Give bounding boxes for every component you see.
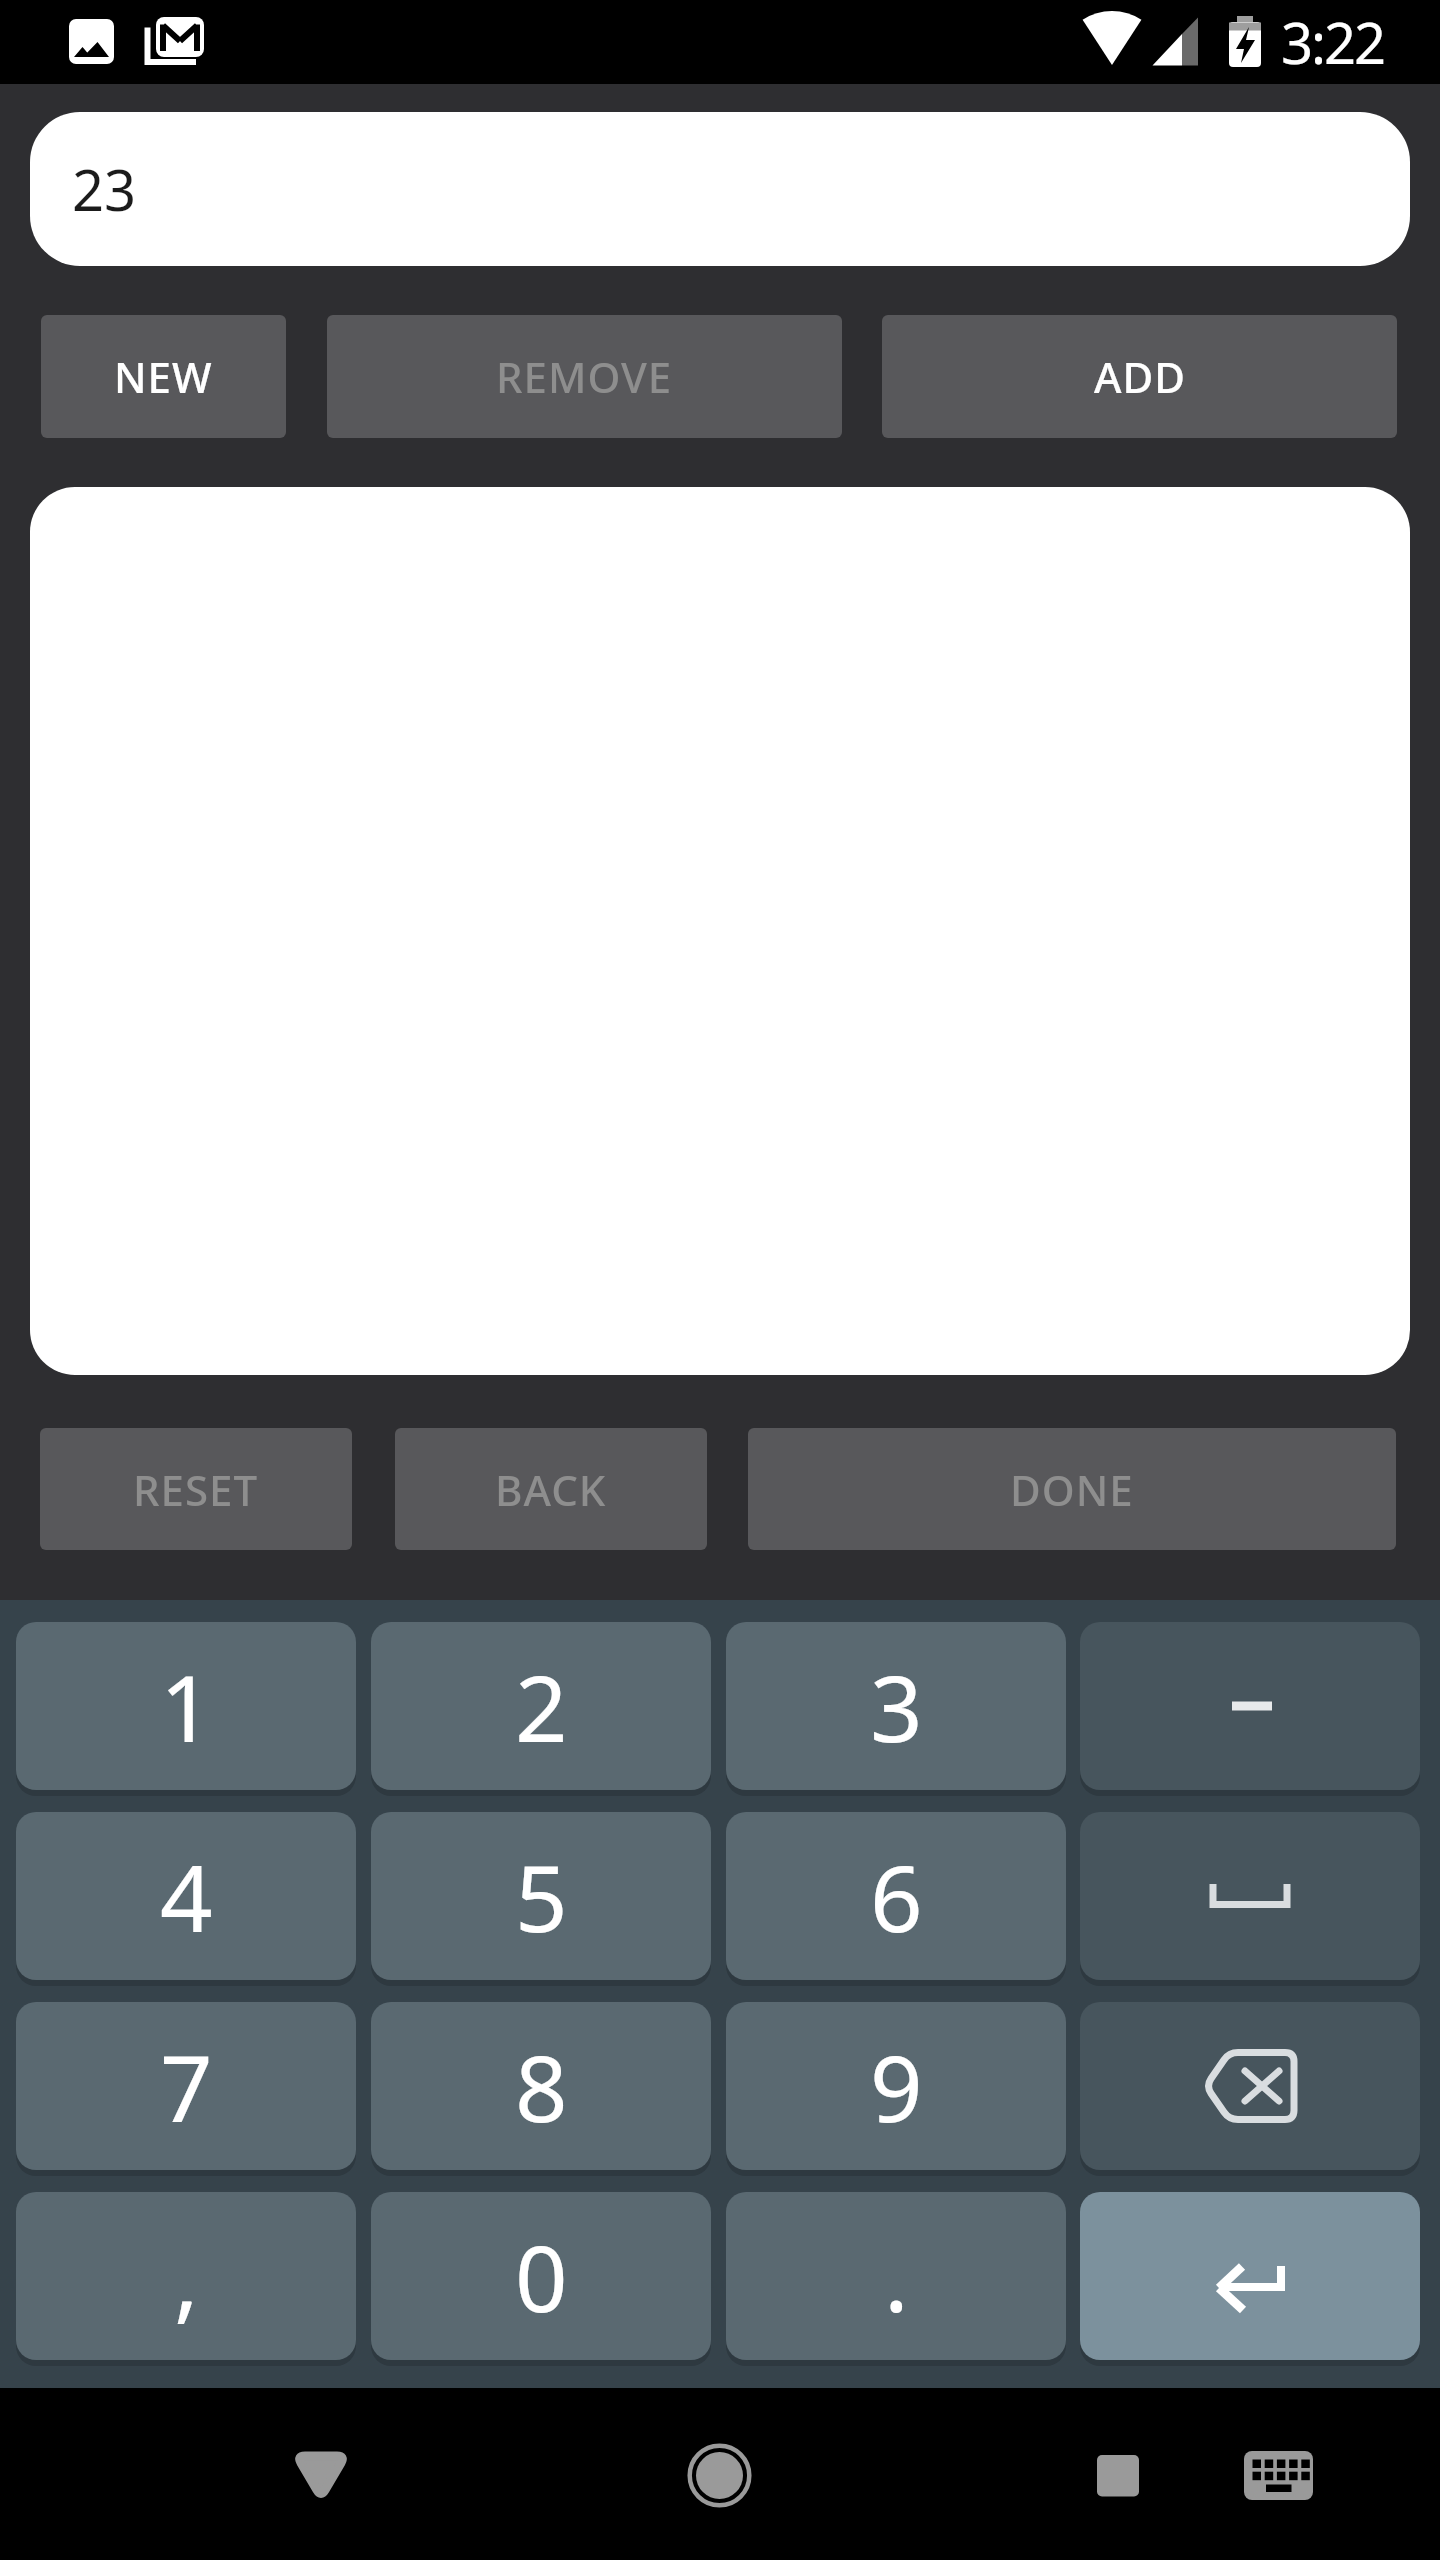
button[interactable]: 0 xyxy=(371,2192,711,2360)
staticText: 1 xyxy=(160,1644,213,1769)
button[interactable]: 1 xyxy=(16,1622,356,1790)
staticText: 4 xyxy=(160,1834,213,1959)
button[interactable]: 5 xyxy=(371,1812,711,1980)
staticText: 5 xyxy=(515,1834,568,1959)
staticText: RESET xyxy=(133,1461,259,1518)
staticText: 3:22 xyxy=(1281,4,1385,80)
button[interactable]: 23 xyxy=(30,112,1410,266)
staticText: 9 xyxy=(870,2024,923,2149)
button[interactable] xyxy=(1080,2192,1420,2360)
button[interactable] xyxy=(1080,2002,1420,2170)
button[interactable]: . xyxy=(726,2192,1066,2360)
staticText: DONE xyxy=(1010,1461,1134,1518)
button[interactable] xyxy=(1078,2435,1158,2515)
button[interactable]: 6 xyxy=(726,1812,1066,1980)
staticText: BACK xyxy=(495,1461,607,1518)
button[interactable]: BACK xyxy=(395,1428,707,1550)
button[interactable] xyxy=(680,2435,760,2515)
button[interactable]: 3 xyxy=(726,1622,1066,1790)
staticText: 6 xyxy=(870,1834,923,1959)
button[interactable]: ADD xyxy=(882,315,1397,438)
button[interactable]: 4 xyxy=(16,1812,356,1980)
button[interactable]: NEW xyxy=(41,315,286,438)
button[interactable]: REMOVE xyxy=(327,315,842,438)
staticText: 3 xyxy=(870,1644,923,1769)
button[interactable]: RESET xyxy=(40,1428,352,1550)
staticText: . xyxy=(884,2214,909,2339)
staticText: 7 xyxy=(160,2024,213,2149)
staticText: , xyxy=(174,2214,199,2339)
button[interactable] xyxy=(1238,2435,1318,2515)
staticText: 2 xyxy=(515,1644,568,1769)
button[interactable]: 2 xyxy=(371,1622,711,1790)
staticText: REMOVE xyxy=(496,348,673,405)
button[interactable]: , xyxy=(16,2192,356,2360)
button[interactable] xyxy=(280,2435,360,2515)
staticText: ADD xyxy=(1094,348,1186,405)
button[interactable]: 8 xyxy=(371,2002,711,2170)
staticText: 8 xyxy=(515,2024,568,2149)
button[interactable]: 7 xyxy=(16,2002,356,2170)
staticText: 23 xyxy=(72,151,137,227)
staticText: NEW xyxy=(114,348,213,405)
button[interactable] xyxy=(1080,1812,1420,1980)
button[interactable] xyxy=(1080,1622,1420,1790)
staticText: 0 xyxy=(515,2214,568,2339)
button[interactable]: DONE xyxy=(748,1428,1396,1550)
button[interactable]: 9 xyxy=(726,2002,1066,2170)
